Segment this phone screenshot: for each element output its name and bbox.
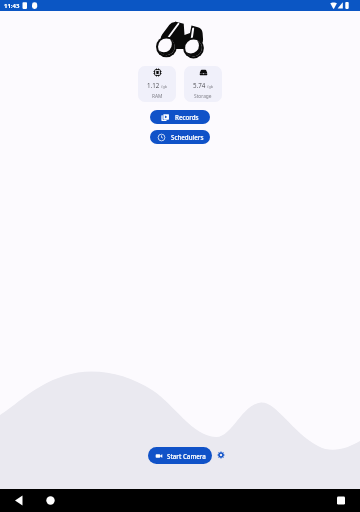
button[interactable]: Settings bbox=[212, 446, 230, 464]
staticText: Start Camera bbox=[167, 452, 206, 460]
staticText: Records bbox=[175, 113, 199, 121]
staticText: Schedulers bbox=[171, 133, 204, 141]
staticText: /gb bbox=[161, 84, 168, 89]
button[interactable]: 1.12 bbox=[138, 66, 176, 102]
staticText: 11:43 bbox=[4, 2, 20, 10]
staticText: 1.12 bbox=[147, 81, 160, 89]
button[interactable]: Records bbox=[150, 110, 210, 124]
button[interactable]: 5.74 bbox=[184, 66, 222, 102]
button[interactable]: Start Camera bbox=[148, 447, 212, 464]
staticText: Storage bbox=[194, 93, 212, 100]
staticText: RAM bbox=[152, 93, 163, 100]
staticText: 5.74 bbox=[193, 81, 206, 89]
button[interactable]: Schedulers bbox=[150, 130, 210, 144]
staticText: /gb bbox=[207, 84, 214, 89]
